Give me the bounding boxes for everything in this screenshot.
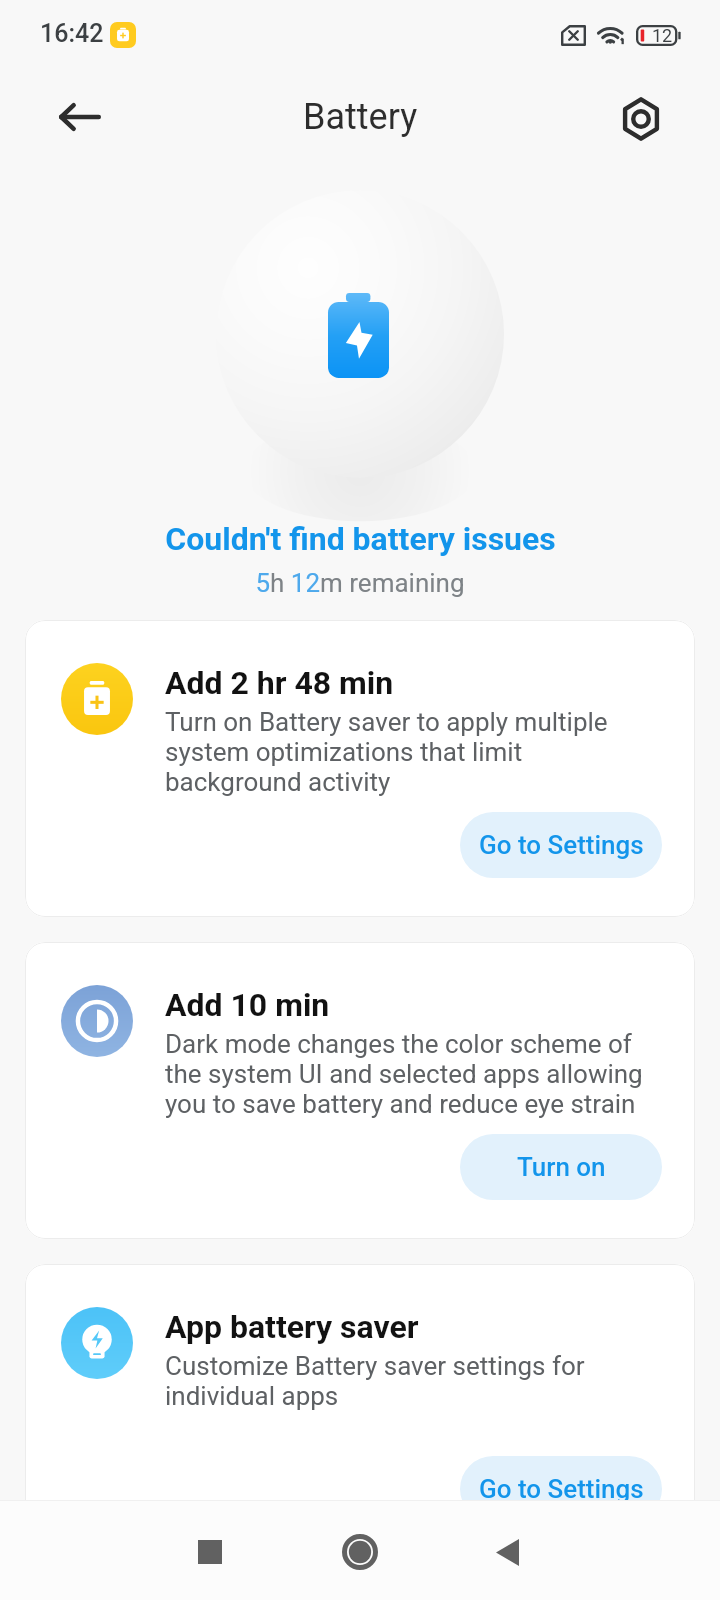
- button[interactable]: Back: [471, 1516, 543, 1588]
- button[interactable]: Add 10 min: [25, 942, 695, 1239]
- button[interactable]: Turn on: [460, 1134, 662, 1200]
- staticText: Customize Battery saver settings for ind…: [165, 1351, 647, 1411]
- button[interactable]: Back: [44, 81, 116, 153]
- staticText: 5h 12m remaining: [255, 568, 465, 598]
- staticText: 16:42: [40, 19, 104, 48]
- staticText: Dark mode changes the color scheme of th…: [165, 1029, 647, 1119]
- button[interactable]: Go to Settings: [460, 812, 662, 878]
- button[interactable]: Go to Settings: [460, 1456, 662, 1522]
- staticText: App battery saver: [165, 1308, 419, 1346]
- button[interactable]: Add 2 hr 48 min: [25, 620, 695, 917]
- button[interactable]: Recent apps: [174, 1516, 246, 1588]
- staticText: Battery: [303, 96, 418, 138]
- staticText: 12: [652, 25, 673, 46]
- staticText: Turn on: [517, 1152, 606, 1182]
- staticText: Go to Settings: [479, 830, 644, 860]
- staticText: Go to Settings: [479, 1474, 644, 1504]
- staticText: Turn on Battery saver to apply multiple …: [165, 707, 647, 797]
- staticText: Add 10 min: [165, 986, 330, 1024]
- button[interactable]: App battery saver: [25, 1264, 695, 1561]
- button[interactable]: Home: [324, 1516, 396, 1588]
- button[interactable]: Settings: [605, 83, 677, 155]
- staticText: Add 2 hr 48 min: [165, 664, 394, 702]
- staticText: Couldn't find battery issues: [165, 520, 556, 558]
